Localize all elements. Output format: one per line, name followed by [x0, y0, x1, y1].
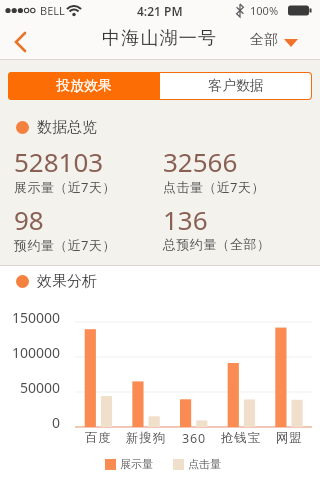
button[interactable]: 全部 [250, 31, 298, 49]
staticText: 100% [250, 3, 279, 18]
staticText: 效果分析 [37, 272, 97, 291]
staticText: 点击量（近7天） [163, 178, 265, 196]
button[interactable]: 新搜狗 [116, 430, 176, 446]
staticText: 136 [163, 202, 208, 237]
staticText: 98 [14, 202, 44, 237]
button[interactable]: 抢钱宝 [211, 430, 271, 446]
staticText: 32566 [163, 144, 238, 179]
staticText: 150000 [12, 308, 61, 327]
staticText: 全部 [250, 31, 278, 49]
staticText: 抢钱宝 [221, 430, 261, 446]
staticText: 50000 [20, 378, 61, 397]
staticText: 百度 [85, 430, 112, 446]
staticText: 数据总览 [37, 118, 97, 137]
staticText: 网盟 [276, 430, 303, 446]
button[interactable]: 360 [164, 430, 224, 446]
staticText: 中海山湖一号 [102, 27, 218, 50]
button[interactable] [0, 20, 40, 60]
button[interactable]: 客户数据 [160, 73, 311, 99]
staticText: 投放效果 [56, 77, 112, 95]
button[interactable]: 百度 [68, 430, 128, 446]
staticText: BELL [40, 3, 65, 18]
staticText: 0 [52, 413, 61, 432]
staticText: 展示量（近7天） [14, 178, 116, 196]
staticText: 360 [182, 430, 206, 446]
staticText: 预约量（近7天） [14, 236, 116, 254]
staticText: 总预约量（全部） [163, 236, 271, 252]
staticText: 100000 [12, 343, 61, 362]
button[interactable]: 网盟 [259, 430, 319, 446]
staticText: 528103 [14, 144, 104, 179]
staticText: 展示量 [120, 457, 153, 471]
staticText: 点击量 [188, 457, 221, 471]
staticText: 新搜狗 [126, 430, 166, 446]
button[interactable]: 投放效果 [8, 72, 160, 100]
staticText: 客户数据 [208, 77, 264, 95]
staticText: 4:21 PM [137, 3, 183, 19]
